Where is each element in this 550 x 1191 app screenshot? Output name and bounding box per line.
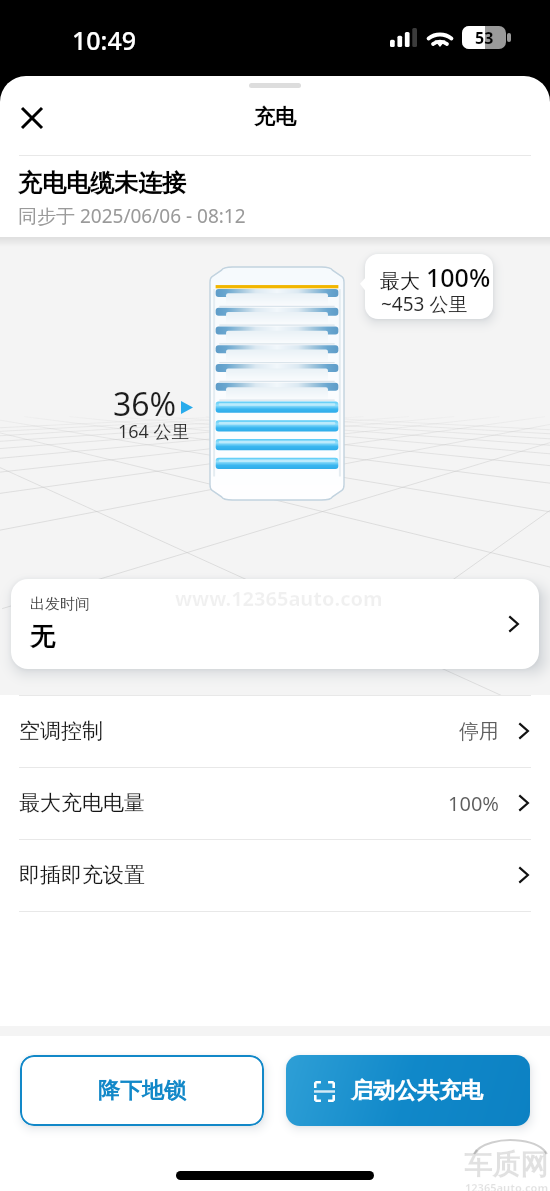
- staticText: 充电电缆未连接: [18, 168, 186, 198]
- button[interactable]: 启动公共充电: [286, 1055, 530, 1126]
- staticText: ~453 公里: [381, 291, 468, 317]
- button[interactable]: 即插即充设置: [0, 839, 550, 911]
- staticText: 最大: [380, 267, 426, 294]
- staticText: 100%: [448, 790, 499, 817]
- staticText: 无: [30, 621, 55, 652]
- staticText: www.12365auto.com: [175, 585, 383, 612]
- button[interactable]: 降下地锁: [20, 1055, 264, 1126]
- staticText: 100%: [426, 260, 491, 294]
- button[interactable]: 最大充电电量: [0, 767, 550, 839]
- button[interactable]: 空调控制: [0, 695, 550, 767]
- staticText: 空调控制: [19, 718, 103, 744]
- staticText: 53: [475, 27, 494, 49]
- staticText: 出发时间: [30, 595, 90, 614]
- button[interactable]: Close: [7, 92, 57, 142]
- staticText: 车质网: [464, 1147, 548, 1182]
- staticText: 即插即充设置: [19, 862, 145, 888]
- staticText: 12365auto.com: [465, 1180, 549, 1191]
- staticText: 降下地锁: [98, 1077, 186, 1105]
- button[interactable]: 出发时间: [11, 579, 539, 669]
- staticText: 启动公共充电: [351, 1077, 483, 1105]
- staticText: 10:49: [72, 23, 137, 57]
- staticText: 最大充电电量: [19, 790, 145, 816]
- staticText: 充电: [254, 104, 296, 130]
- staticText: 164 公里: [118, 419, 190, 444]
- staticText: 同步于 2025/06/06 - 08:12: [18, 203, 246, 229]
- staticText: 36%: [113, 382, 177, 426]
- staticText: 停用: [459, 719, 499, 744]
